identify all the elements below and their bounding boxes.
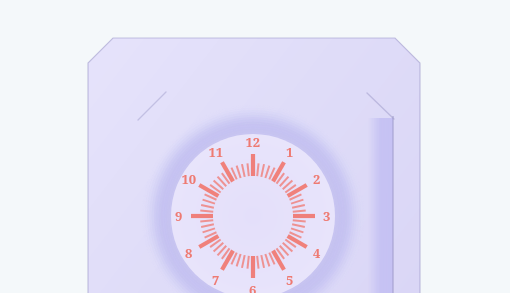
- button[interactable]: Analog watch face: [0, 0, 510, 293]
